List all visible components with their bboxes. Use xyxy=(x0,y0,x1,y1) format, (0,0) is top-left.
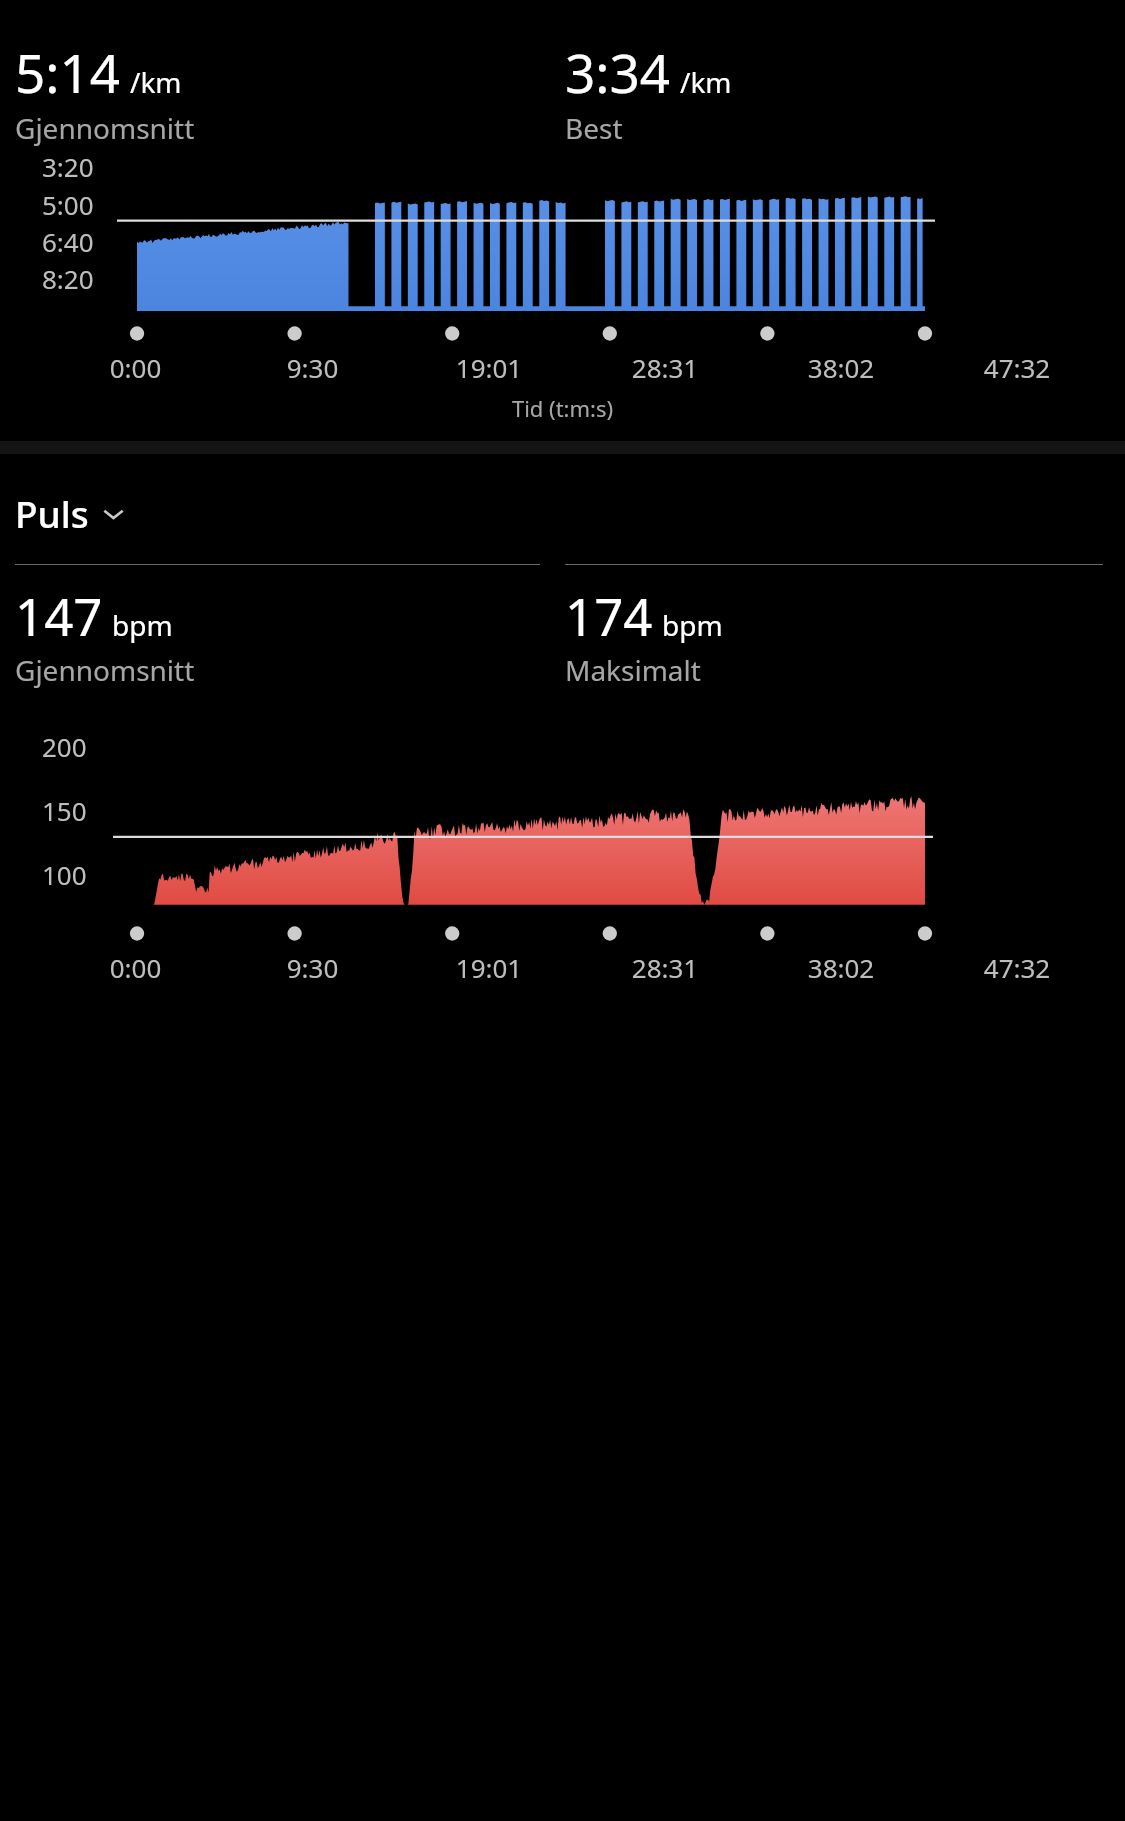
staticText: 28:31 xyxy=(577,350,753,385)
button[interactable]: 174 xyxy=(562,564,1125,689)
staticText: Puls xyxy=(15,488,89,538)
staticText: 100 xyxy=(42,857,87,892)
staticText: 47:32 xyxy=(929,350,1105,385)
staticText: 19:01 xyxy=(401,950,577,985)
staticText: 3:34 xyxy=(565,36,671,108)
staticText: 5:00 xyxy=(42,187,94,222)
staticText: bpm xyxy=(112,606,173,644)
staticText: 9:30 xyxy=(224,350,401,385)
staticText: /km xyxy=(130,63,182,101)
staticText: 200 xyxy=(42,729,87,764)
staticText: 5:14 xyxy=(15,36,121,108)
staticText: 38:02 xyxy=(753,350,929,385)
staticText: 147 xyxy=(15,581,103,650)
staticText: 0:00 xyxy=(47,350,224,385)
staticText: Best xyxy=(565,109,623,147)
staticText: /km xyxy=(680,63,732,101)
staticText: 8:20 xyxy=(42,261,94,296)
staticText: Maksimalt xyxy=(565,651,701,689)
staticText: 9:30 xyxy=(224,950,401,985)
staticText: 0:00 xyxy=(47,950,224,985)
staticText: 28:31 xyxy=(577,950,753,985)
staticText: 3:20 xyxy=(42,149,94,184)
staticText: 38:02 xyxy=(753,950,929,985)
button[interactable]: Puls xyxy=(0,484,1125,542)
button[interactable]: 3:34 xyxy=(562,36,1125,147)
staticText: Gjennomsnitt xyxy=(15,109,195,147)
staticText: 6:40 xyxy=(42,224,94,259)
staticText: 19:01 xyxy=(401,350,577,385)
button[interactable]: 5:14 xyxy=(0,36,562,147)
staticText: Gjennomsnitt xyxy=(15,651,195,689)
staticText: 47:32 xyxy=(929,950,1105,985)
staticText: bpm xyxy=(662,606,723,644)
staticText: Tid (t:m:s) xyxy=(0,393,1125,423)
button[interactable]: 147 xyxy=(0,564,562,689)
other: Expand heart rate xyxy=(102,502,125,525)
staticText: 174 xyxy=(565,581,653,650)
staticText: 150 xyxy=(42,793,87,828)
